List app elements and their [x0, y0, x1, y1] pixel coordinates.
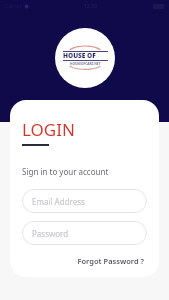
staticText: 12:30: [84, 3, 97, 10]
button[interactable]: Email Address: [22, 189, 147, 213]
staticText: Sign in to your account: [22, 166, 109, 177]
staticText: LOGIN: [22, 118, 75, 141]
staticText: Password: [32, 228, 69, 239]
other: House of Carz logo: [61, 43, 109, 73]
button[interactable]: Password: [22, 221, 147, 245]
staticText: HOUSEOFCARZ.NET: [70, 62, 101, 66]
staticText: Email Address: [32, 196, 85, 207]
staticText: HOUSE OF CARZ: [63, 51, 108, 61]
button[interactable]: Forgot Password ?: [74, 254, 147, 268]
